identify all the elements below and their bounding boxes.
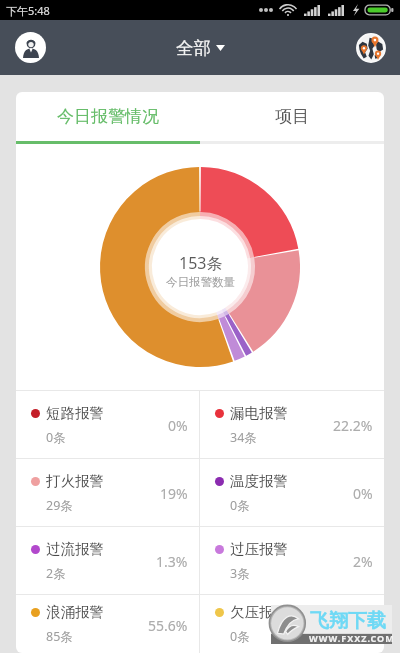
staticText: 下午5:48: [6, 3, 50, 18]
staticText: 全部: [176, 37, 211, 59]
staticText: 0条: [46, 429, 66, 446]
staticText: 0%: [353, 616, 373, 635]
staticText: 过压报警: [230, 540, 288, 558]
button[interactable]: 过流报警: [16, 527, 199, 594]
button[interactable]: 欠压报警: [200, 595, 384, 653]
staticText: 19%: [160, 484, 188, 503]
staticText: 1.3%: [156, 552, 188, 571]
staticText: 22.2%: [333, 416, 373, 435]
button[interactable]: 浪涌报警: [16, 595, 199, 653]
staticText: 今日报警情况: [57, 106, 159, 127]
staticText: 过流报警: [46, 540, 104, 558]
button[interactable]: 打火报警: [16, 459, 199, 526]
staticText: 85条: [46, 628, 73, 645]
staticText: 55.6%: [148, 616, 188, 635]
button[interactable]: 项目: [200, 92, 384, 141]
staticText: 飞翔下载: [310, 609, 386, 633]
button[interactable]: 短路报警: [16, 391, 199, 458]
staticText: 漏电报警: [230, 404, 288, 422]
staticText: 0条: [230, 628, 250, 645]
staticText: 浪涌报警: [46, 603, 104, 621]
staticText: 欠压报警: [230, 603, 288, 621]
button[interactable]: Map: [355, 32, 387, 64]
staticText: WWW.FXXZ.COM: [309, 632, 395, 644]
button[interactable]: 过压报警: [200, 527, 384, 594]
staticText: 短路报警: [46, 404, 104, 422]
staticText: 153条: [179, 252, 223, 274]
staticText: 2条: [46, 565, 66, 582]
staticText: 0%: [353, 484, 373, 503]
button[interactable]: 漏电报警: [200, 391, 384, 458]
button[interactable]: 温度报警: [200, 459, 384, 526]
staticText: 打火报警: [46, 472, 104, 490]
staticText: 0%: [168, 416, 188, 435]
staticText: 项目: [275, 106, 309, 127]
staticText: 0条: [230, 497, 250, 514]
button[interactable]: Profile: [15, 32, 46, 63]
staticText: 今日报警数量: [166, 275, 235, 289]
staticText: 温度报警: [230, 472, 288, 490]
button[interactable]: 今日报警情况: [16, 92, 200, 141]
staticText: 34条: [230, 429, 257, 446]
button[interactable]: 全部: [176, 37, 225, 59]
staticText: 3条: [230, 565, 250, 582]
staticText: 29条: [46, 497, 73, 514]
staticText: 2%: [353, 552, 373, 571]
